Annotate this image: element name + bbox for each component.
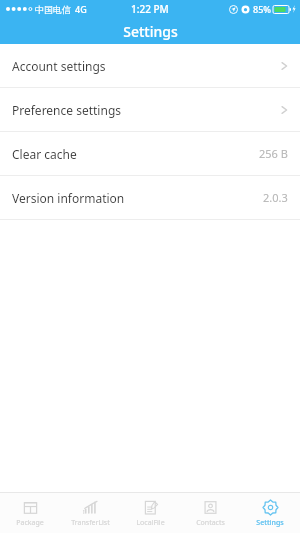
- staticText: Preference settings: [12, 102, 122, 118]
- staticText: Account settings: [12, 58, 106, 74]
- button[interactable]: Version information: [0, 176, 300, 219]
- staticText: 85%: [253, 3, 271, 15]
- button[interactable]: Contacts: [180, 499, 240, 528]
- staticText: Version information: [12, 190, 125, 206]
- button[interactable]: Account settings: [0, 44, 300, 87]
- staticText: Settings: [256, 518, 284, 528]
- staticText: 256 B: [259, 146, 288, 161]
- staticText: 中国电信: [35, 4, 71, 15]
- staticText: TransferList: [71, 518, 110, 528]
- button[interactable]: Clear cache: [0, 132, 300, 175]
- staticText: 2.0.3: [263, 190, 288, 205]
- button[interactable]: TransferList: [60, 499, 120, 528]
- button[interactable]: Preference settings: [0, 88, 300, 131]
- button[interactable]: Settings: [240, 499, 300, 528]
- staticText: Contacts: [196, 518, 225, 528]
- staticText: Clear cache: [12, 146, 77, 162]
- staticText: 1:22 PM: [131, 2, 169, 16]
- staticText: Package: [16, 518, 44, 528]
- staticText: Settings: [123, 22, 178, 41]
- button[interactable]: LocalFile: [120, 499, 180, 528]
- staticText: LocalFile: [136, 518, 165, 528]
- button[interactable]: Package: [0, 499, 60, 528]
- staticText: 4G: [75, 3, 87, 15]
